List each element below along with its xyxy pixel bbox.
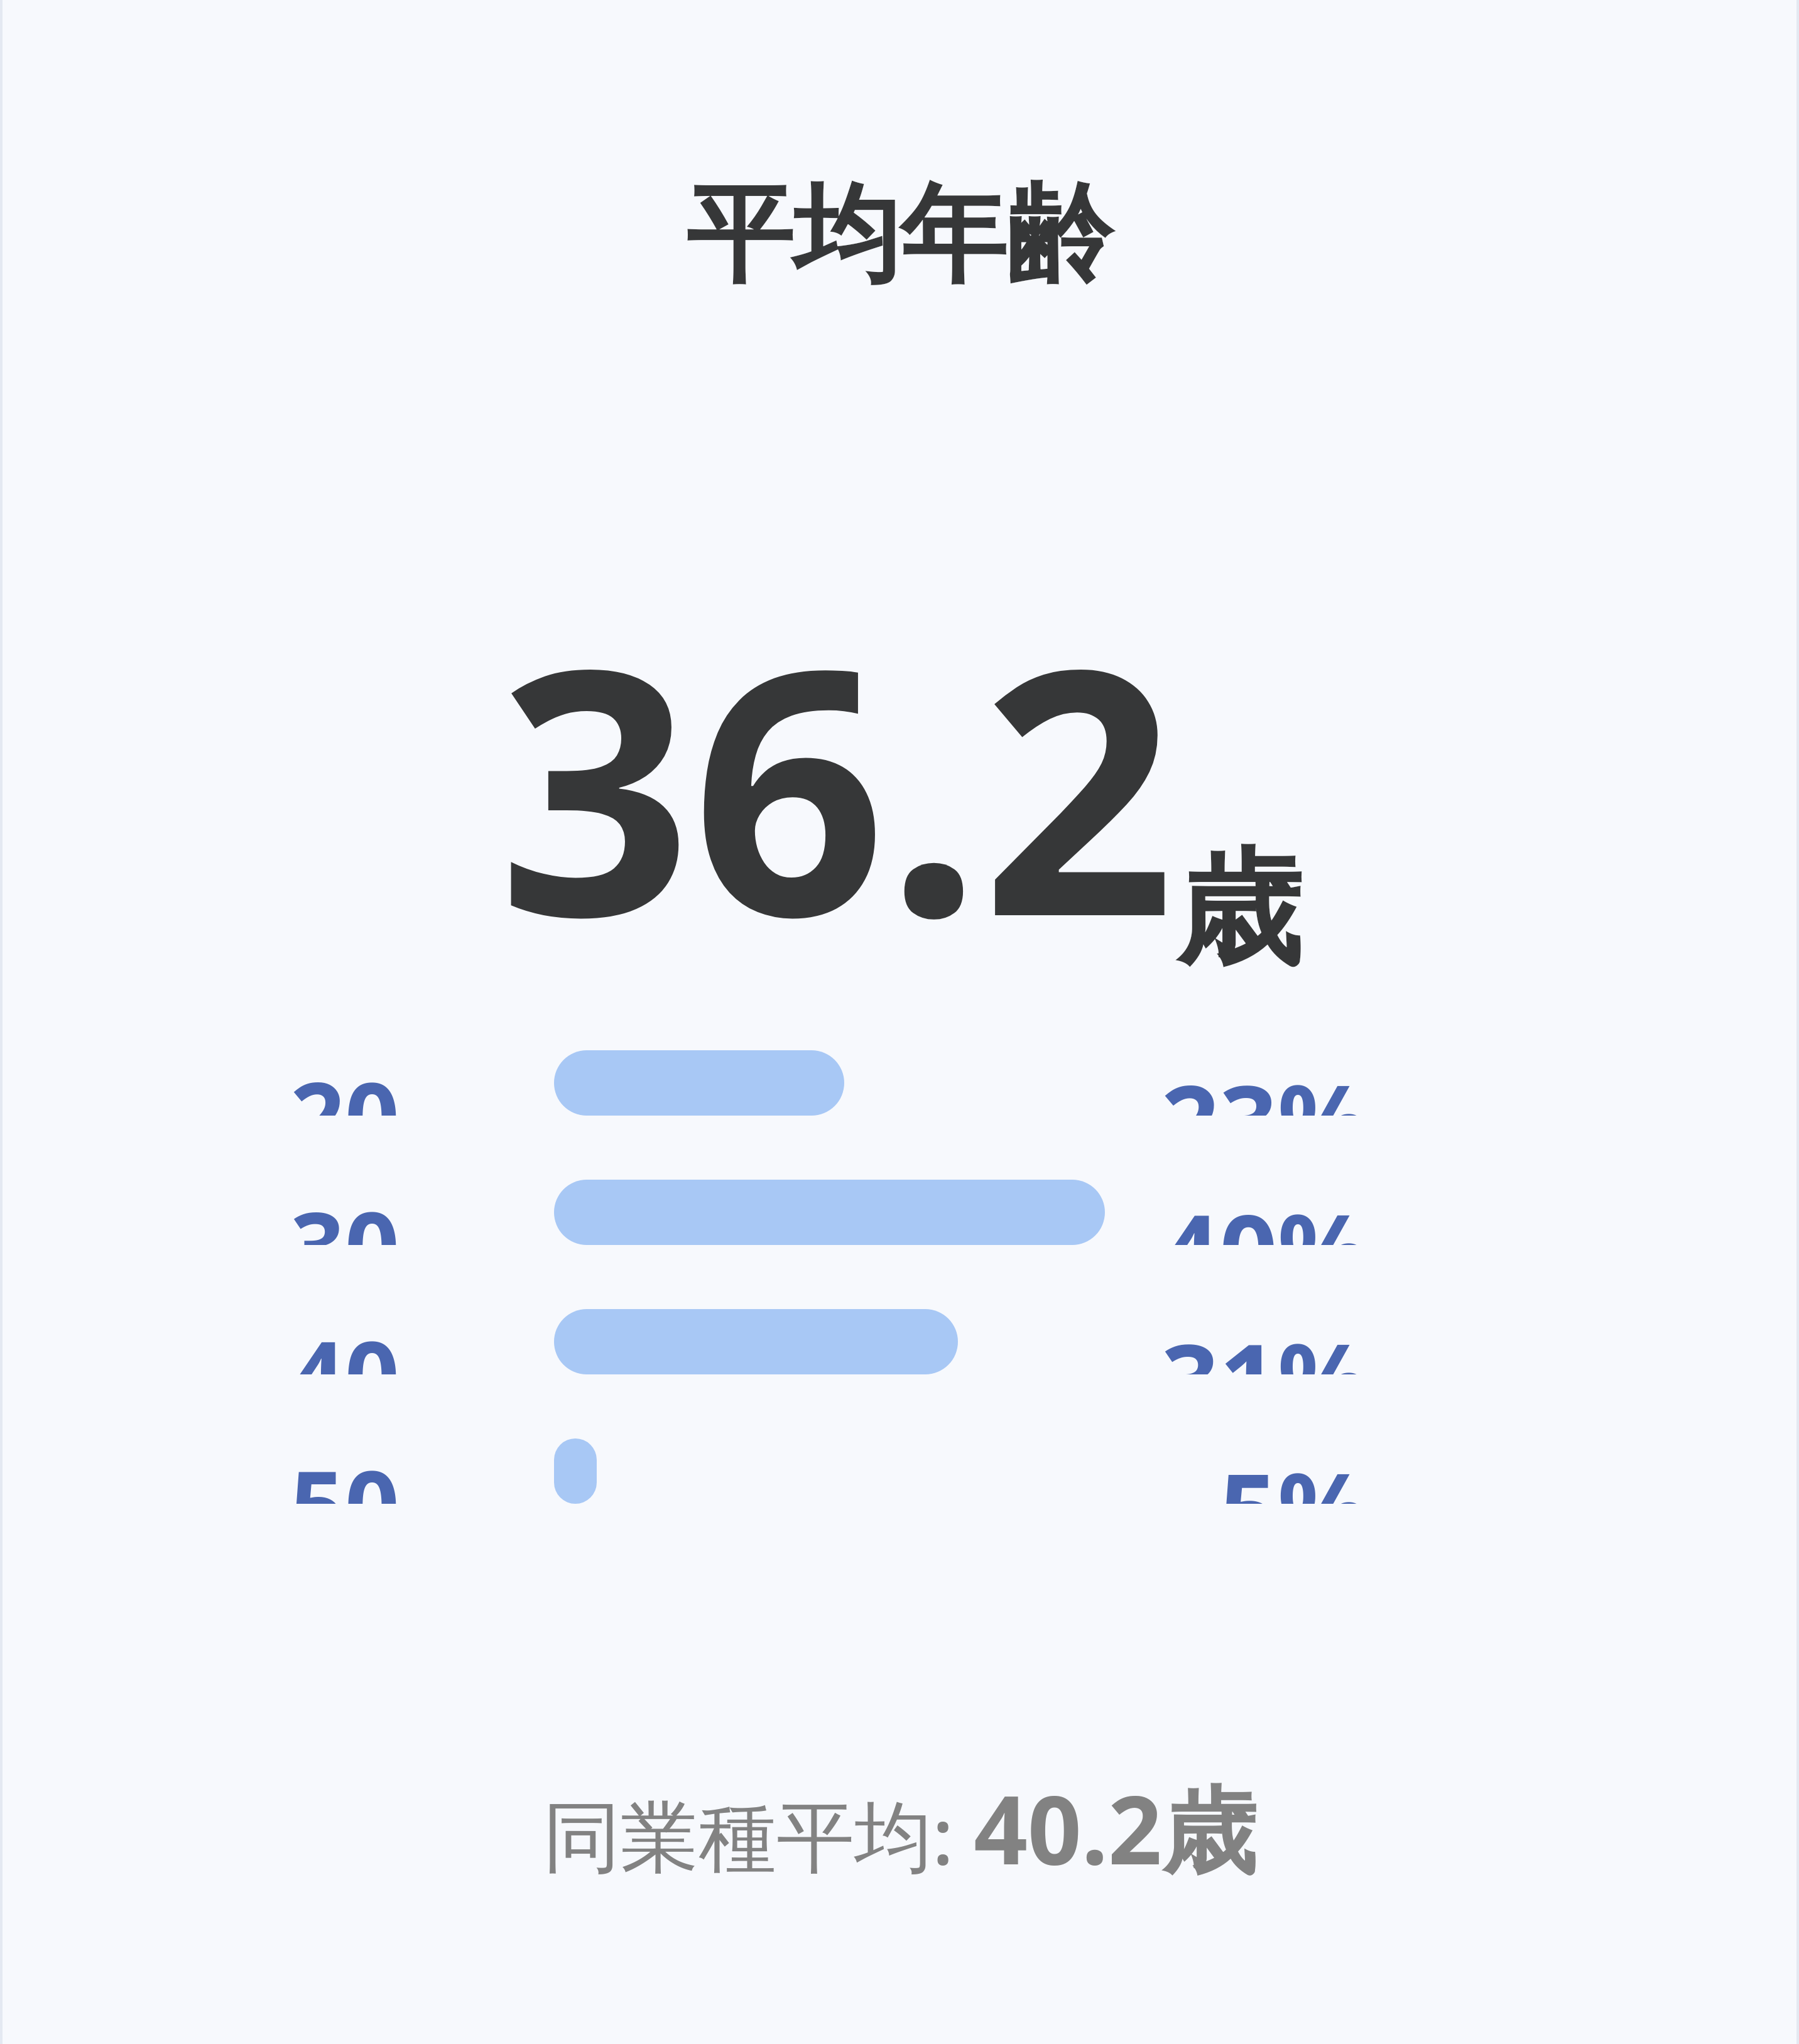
button[interactable]: 30代 [0, 1180, 1799, 1245]
staticText: 40% [1161, 1180, 1369, 1245]
staticText: 20代 [290, 1050, 479, 1116]
staticText: 30代 [290, 1180, 479, 1245]
button[interactable]: 20代 [0, 1050, 1799, 1116]
button[interactable]: 40代 [0, 1309, 1799, 1374]
staticText: 平均年齢 [686, 168, 1113, 303]
button[interactable]: 平均年齢 [686, 168, 1113, 303]
staticText: 40代 [290, 1309, 479, 1374]
button[interactable]: 50代 [0, 1438, 1799, 1504]
button[interactable]: 同業種平均: 40.2歳 [543, 1764, 1256, 1893]
staticText: 23% [1161, 1050, 1369, 1116]
button[interactable]: 36.2 [498, 553, 1302, 1014]
staticText: 50代 [290, 1438, 479, 1504]
staticText: 31% [1161, 1309, 1369, 1374]
staticText: 同業種平均: 40.2歳 [543, 1764, 1256, 1893]
staticText: 5% [1219, 1438, 1369, 1504]
staticText: 36.2 [498, 553, 1176, 1014]
staticText: 歳 [1176, 831, 1302, 989]
